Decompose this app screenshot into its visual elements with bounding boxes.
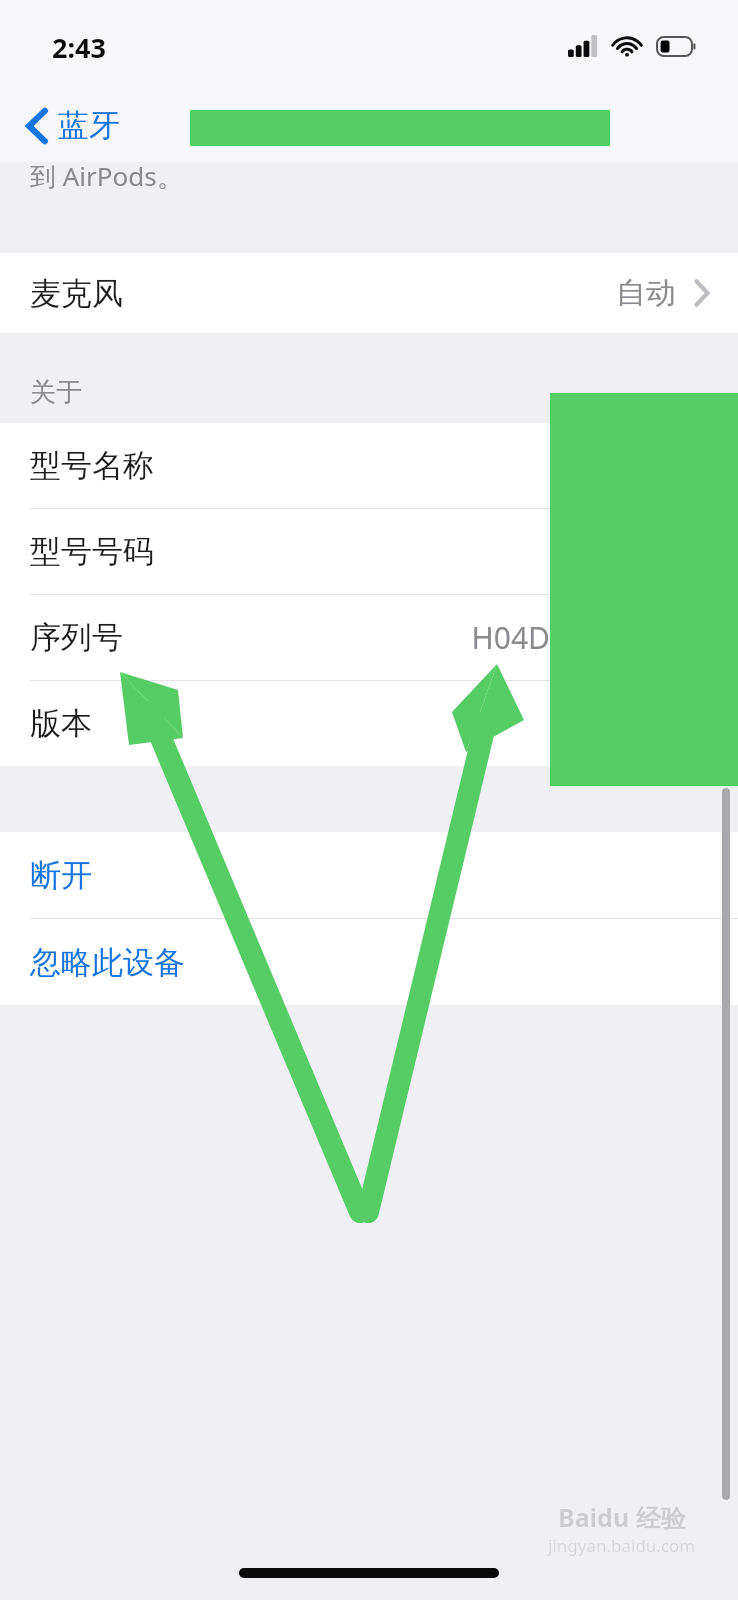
staticText: 型号号码 <box>30 532 154 571</box>
staticText: 序列号 <box>30 618 123 657</box>
staticText: Baidu 经验 <box>558 1500 686 1534</box>
button[interactable]: 断开 <box>0 832 738 918</box>
staticText: 麦克风 <box>30 274 123 313</box>
button[interactable]: 型号名称 <box>0 423 738 508</box>
staticText: 版本 <box>30 704 92 743</box>
staticText: H04D <box>471 617 550 658</box>
button[interactable]: 麦克风 <box>0 253 738 333</box>
staticText: 型号名称 <box>30 446 154 485</box>
staticText: 关于 <box>30 376 82 409</box>
button[interactable]: 蓝牙 <box>20 100 126 151</box>
staticText: 自动 <box>616 274 676 312</box>
staticText: jingyan.baidu.com <box>548 1534 696 1557</box>
staticText: 到 AirPods。 <box>30 158 183 194</box>
button[interactable]: 版本 <box>0 681 738 766</box>
staticText: 忽略此设备 <box>30 943 185 982</box>
staticText: 蓝牙 <box>58 106 120 145</box>
staticText: 断开 <box>30 856 92 895</box>
button[interactable]: 序列号 <box>0 595 738 680</box>
button[interactable]: 型号号码 <box>0 509 738 594</box>
button[interactable]: 忽略此设备 <box>0 919 738 1005</box>
staticText: 2:43 <box>52 29 106 66</box>
